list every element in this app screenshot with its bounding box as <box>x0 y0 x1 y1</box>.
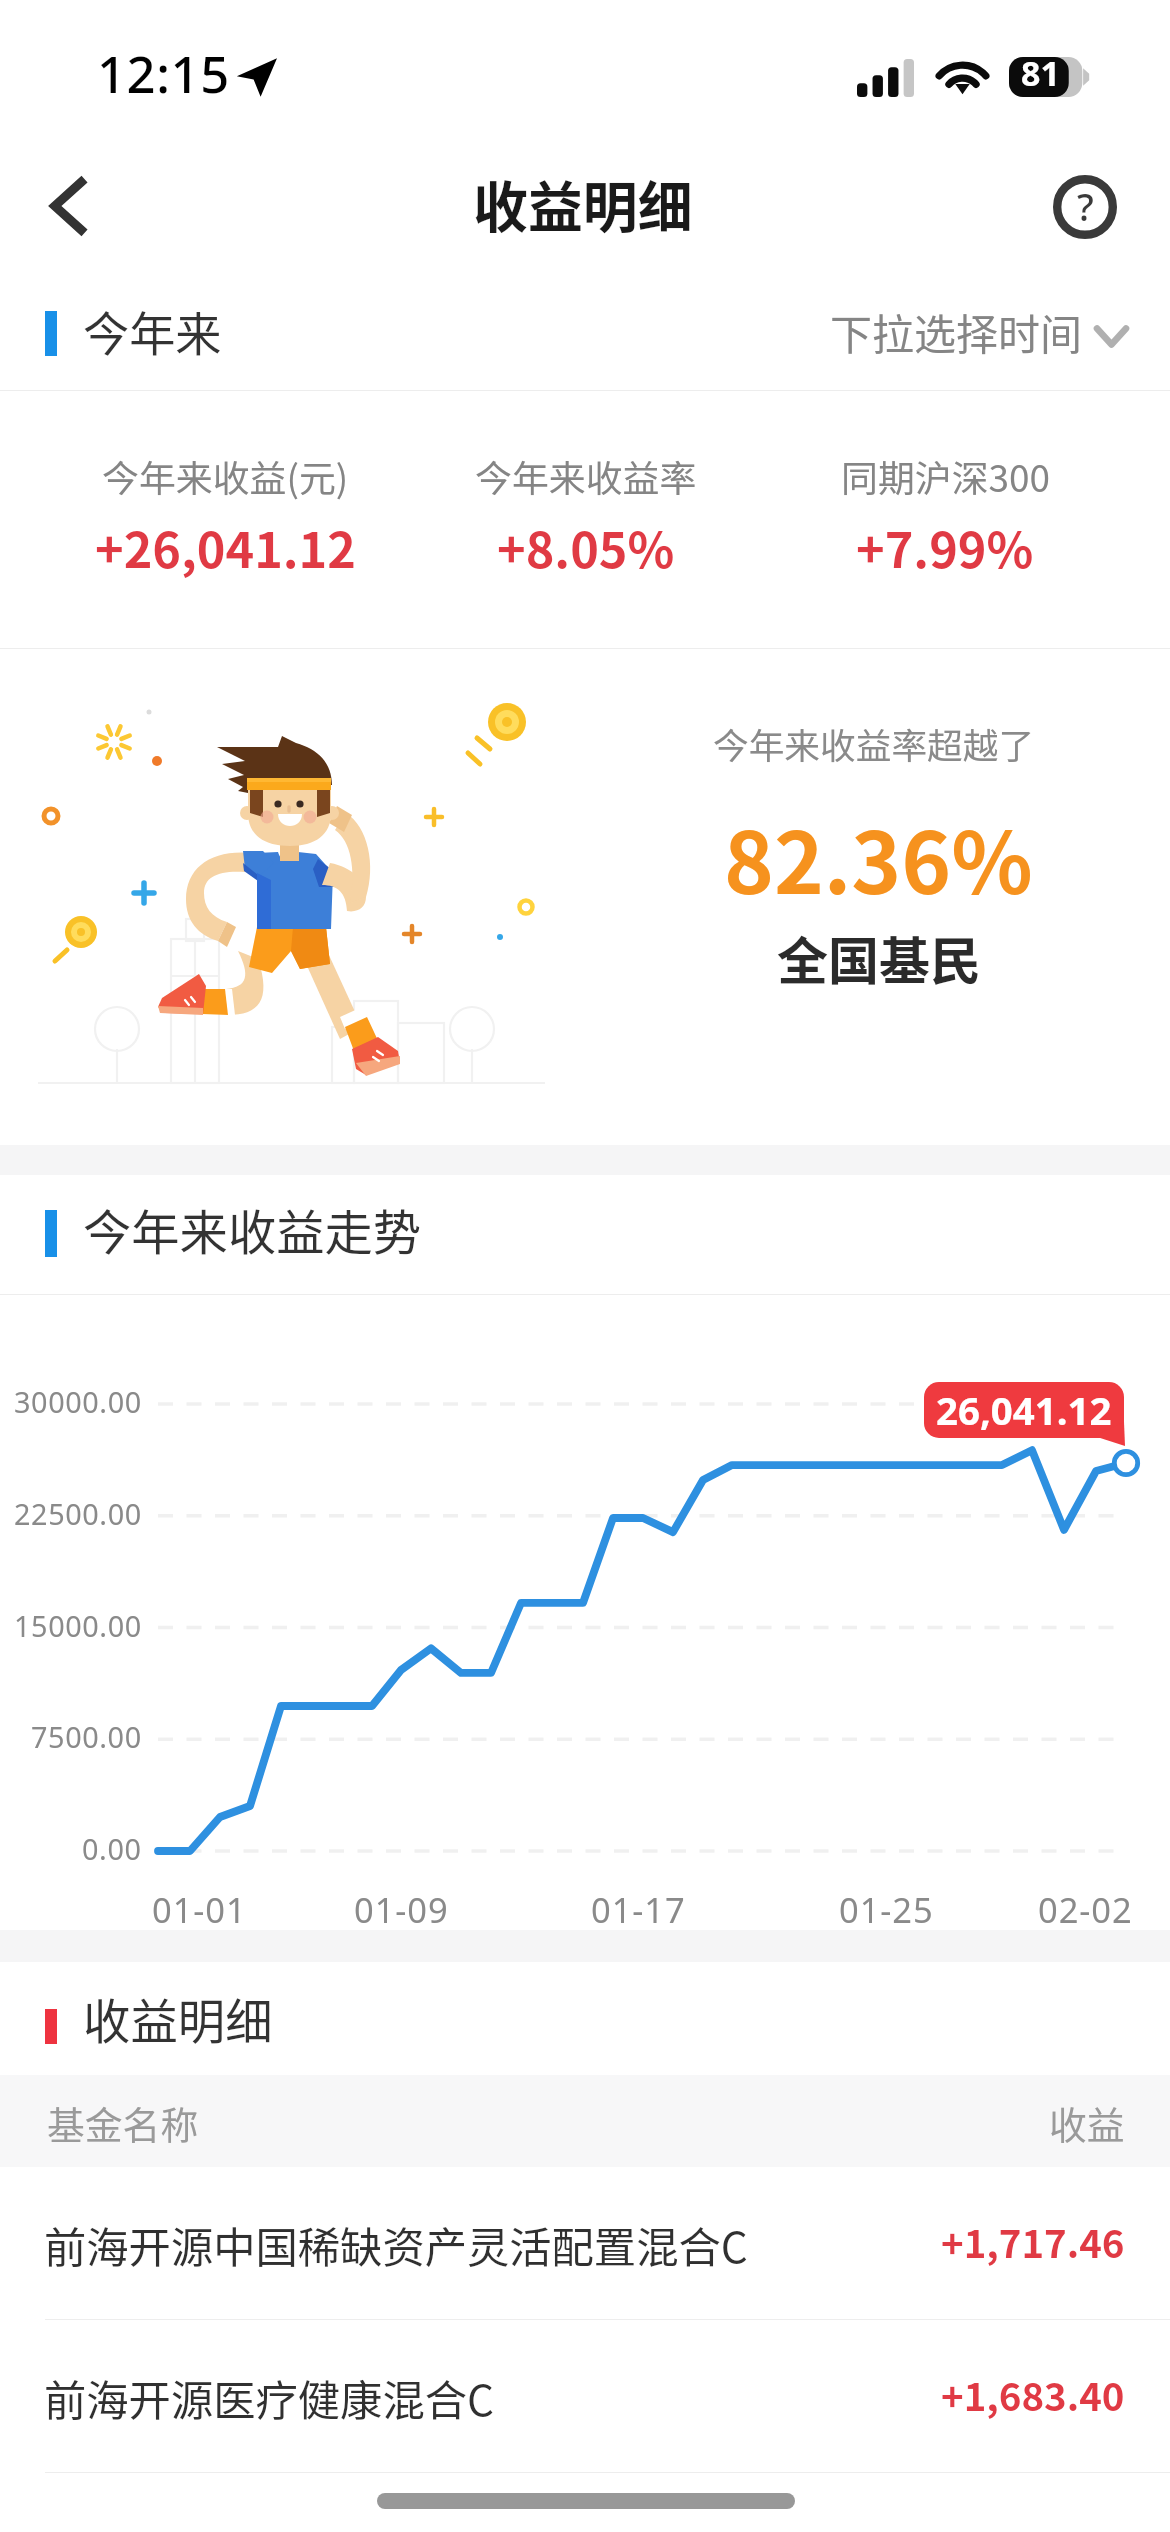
staticText: 前海开源中国稀缺资产灵活配置混合C <box>44 2214 748 2275</box>
staticText: 收益 <box>1049 2095 1125 2150</box>
staticText: 82.36% <box>724 796 1033 919</box>
staticText: +8.05% <box>497 512 675 582</box>
staticText: 今年来收益(元) <box>102 449 349 502</box>
staticText: 01-01 <box>152 1886 247 1933</box>
button[interactable]: 前海开源中国稀缺资产灵活配置混合C <box>0 2167 1170 2319</box>
staticText: 今年来收益率超越了 <box>713 718 1035 770</box>
staticText: 81 <box>1021 50 1060 96</box>
staticText: +1,717.46 <box>941 2213 1125 2269</box>
button[interactable]: 前海开源医疗健康混合C <box>0 2320 1170 2472</box>
staticText: +1,683.40 <box>941 2366 1125 2422</box>
staticText: 收益明细 <box>83 1984 273 2053</box>
staticText: +7.99% <box>856 512 1034 582</box>
staticText: 下拉选择时间 <box>830 301 1083 362</box>
staticText: 今年来 <box>83 297 222 364</box>
staticText: 基金名称 <box>47 2095 199 2150</box>
staticText: 02-02 <box>1038 1886 1133 1933</box>
button[interactable] <box>818 300 1140 362</box>
staticText: 7500.00 <box>31 1717 142 1756</box>
staticText: 01-25 <box>839 1886 934 1933</box>
staticText: 26,041.12 <box>936 1384 1112 1436</box>
button[interactable]: Back <box>42 180 94 232</box>
staticText: 01-17 <box>591 1886 686 1933</box>
staticText: 0.00 <box>82 1829 142 1868</box>
staticText: 01-09 <box>354 1886 449 1933</box>
staticText: +26,041.12 <box>95 512 356 582</box>
staticText: 全国基民 <box>777 921 982 993</box>
staticText: 同期沪深300 <box>841 449 1050 502</box>
staticText: 12:15 <box>97 39 230 108</box>
staticText: 今年来收益走势 <box>83 1194 422 1264</box>
staticText: ? <box>1077 181 1094 232</box>
staticText: 30000.00 <box>14 1382 142 1421</box>
staticText: 收益明细 <box>473 163 693 242</box>
staticText: 22500.00 <box>14 1494 142 1533</box>
button[interactable]: Help <box>1052 174 1118 240</box>
staticText: 前海开源医疗健康混合C <box>44 2367 494 2428</box>
staticText: 今年来收益率 <box>475 449 697 502</box>
staticText: 15000.00 <box>14 1606 142 1645</box>
